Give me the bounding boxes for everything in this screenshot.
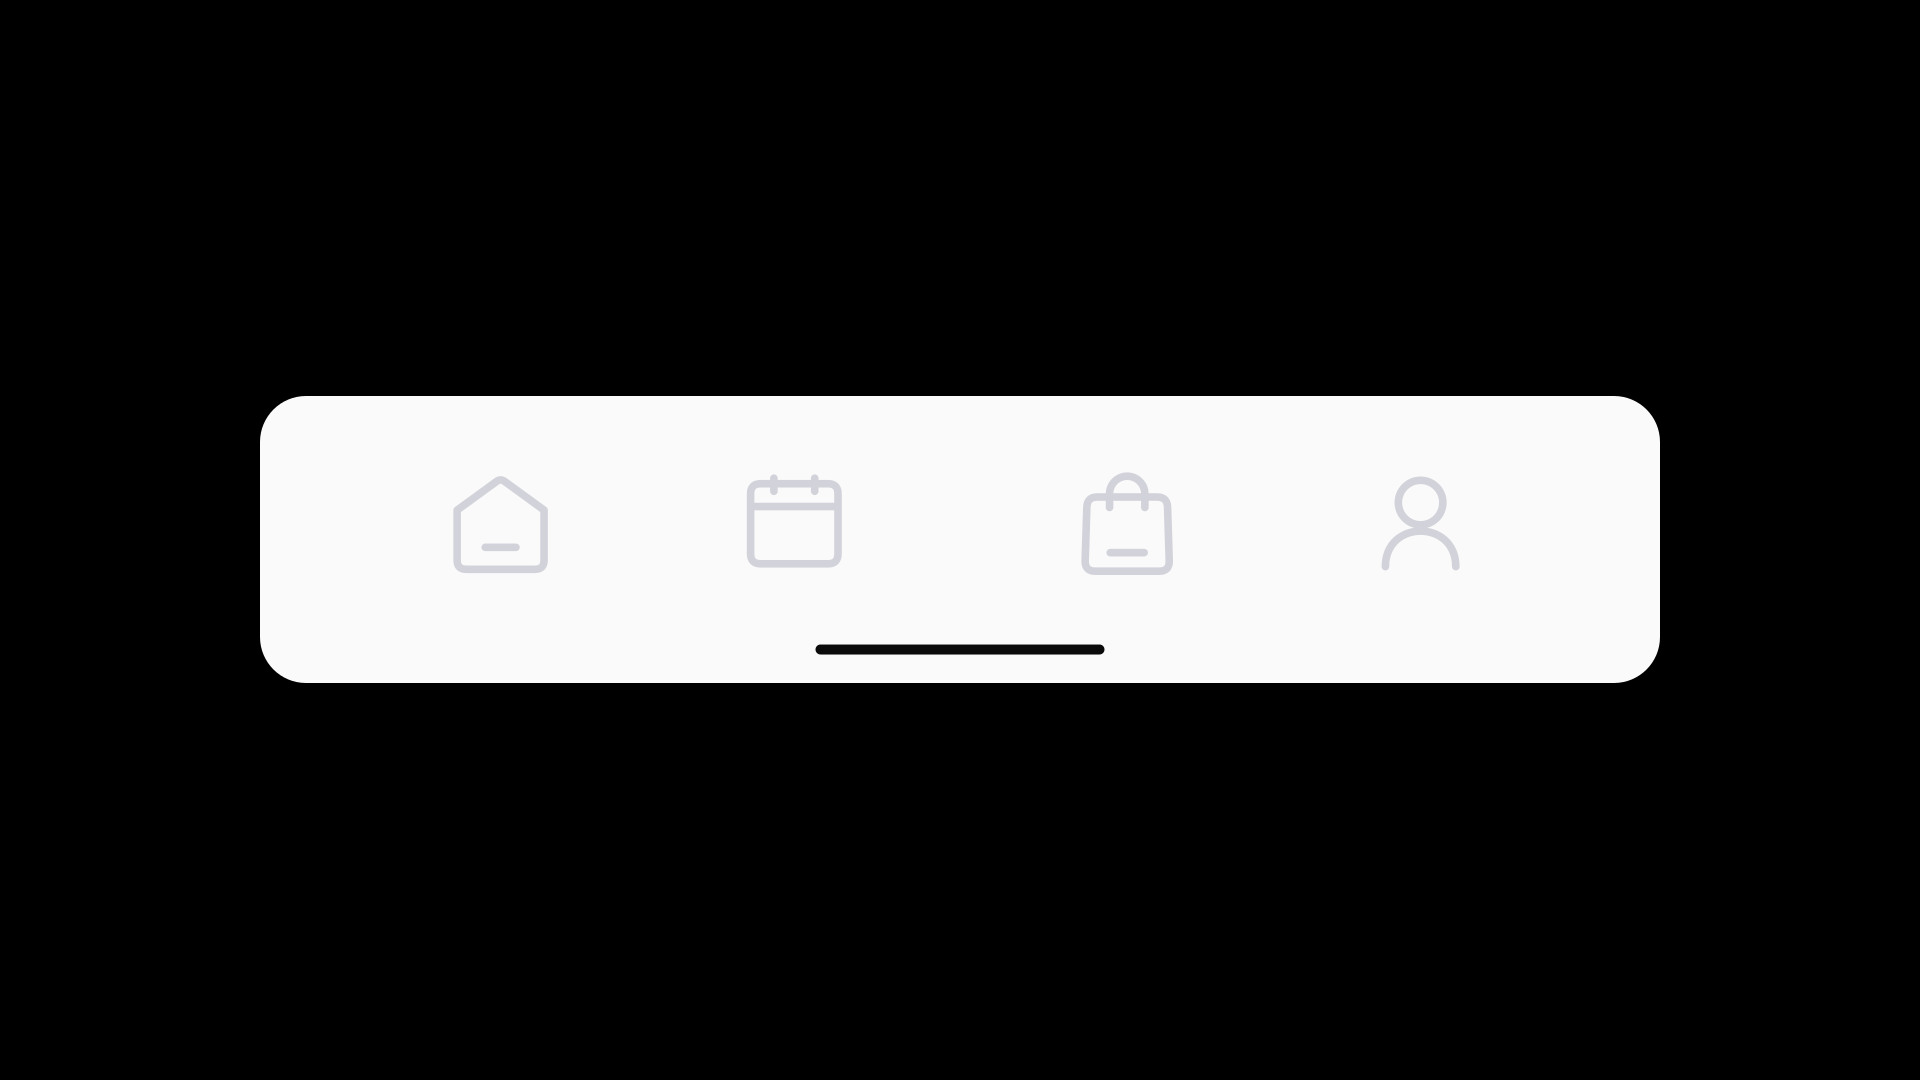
button[interactable]: Calendar xyxy=(649,421,939,621)
button[interactable]: Shop xyxy=(982,424,1272,624)
button[interactable]: Profile xyxy=(1276,423,1566,623)
button[interactable]: Home xyxy=(356,424,646,624)
